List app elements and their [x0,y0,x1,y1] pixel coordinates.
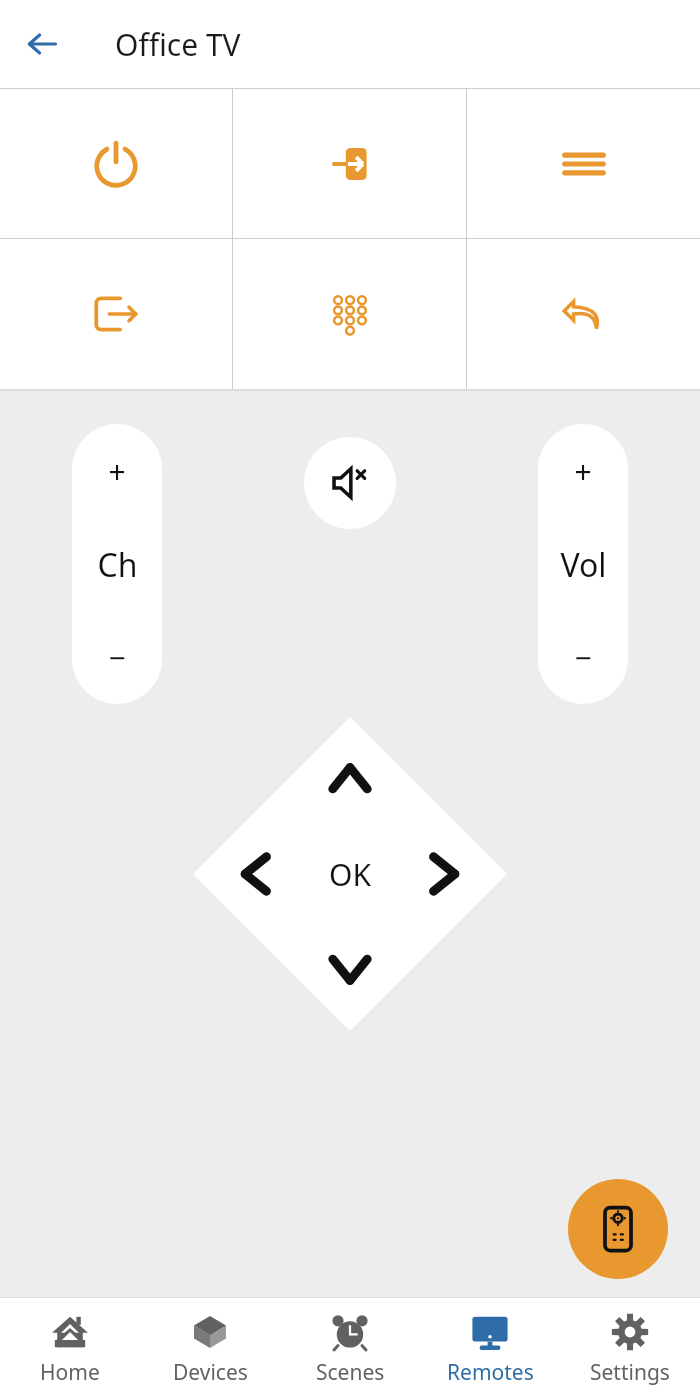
button[interactable]: + [72,424,162,704]
button[interactable]: Mute [304,437,396,529]
button[interactable]: Remote [568,1179,668,1279]
button[interactable]: Power [0,89,232,238]
button[interactable]: Exit [0,239,232,389]
button[interactable]: Devices [140,1298,280,1400]
staticText: Scenes [316,1358,385,1387]
button[interactable]: Remotes [420,1298,560,1400]
staticText: Remotes [447,1358,534,1387]
staticText: Settings [590,1358,670,1387]
button[interactable]: + [538,424,628,704]
staticText: OK [329,854,371,895]
button[interactable]: Scenes [280,1298,420,1400]
button[interactable]: OK [305,829,395,919]
staticText: − [574,637,592,678]
staticText: Home [40,1358,100,1387]
staticText: + [574,451,592,492]
button[interactable]: Settings [560,1298,700,1400]
staticText: + [108,451,126,492]
staticText: Vol [560,543,607,587]
button[interactable]: Input [233,89,466,238]
button[interactable]: Home [0,1298,140,1400]
button[interactable]: Menu [467,89,700,238]
button[interactable]: Back [467,239,700,389]
staticText: Devices [173,1358,248,1387]
button[interactable]: Keypad [233,239,466,389]
staticText: Ch [97,543,138,587]
staticText: Office TV [115,24,241,65]
button[interactable]: Back [14,16,70,72]
staticText: − [108,637,126,678]
